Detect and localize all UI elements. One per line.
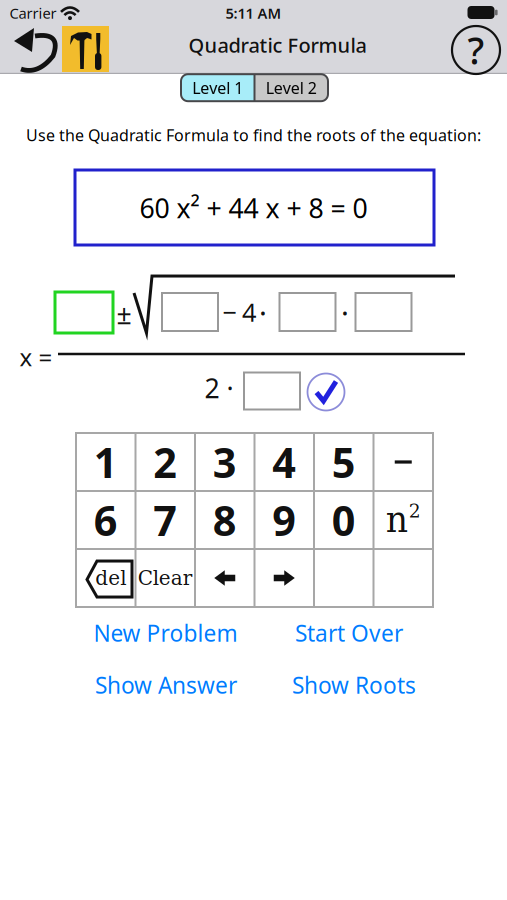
staticText: Level 2 [266, 77, 317, 98]
button[interactable]: 4 [255, 434, 313, 490]
button[interactable]: 2 [136, 434, 194, 490]
staticText: 60 x² + 44 x + 8 = 0 [139, 190, 367, 226]
button[interactable]: Coefficient a [279, 293, 335, 331]
staticText: 4 [272, 435, 296, 489]
button[interactable]: Coefficient b [55, 292, 113, 333]
button[interactable]: Move right [255, 550, 313, 606]
button[interactable]: 9 [255, 492, 313, 548]
button[interactable]: Show Roots [292, 670, 416, 700]
staticText: Carrier [9, 3, 56, 23]
staticText: x = [19, 341, 52, 373]
staticText: 0 [332, 493, 356, 547]
staticText: New Problem [93, 618, 237, 648]
staticText: Start Over [295, 618, 403, 648]
staticText: 2 [153, 435, 177, 489]
staticText: 6 [94, 493, 118, 547]
button[interactable]: 0 [315, 492, 372, 548]
button[interactable]: Coefficient a [244, 372, 300, 409]
button[interactable]: b squared [162, 293, 218, 331]
button[interactable]: 1 [77, 434, 134, 490]
button[interactable]: Check answer [307, 373, 344, 410]
staticText: · [259, 292, 267, 331]
staticText: 4 [242, 295, 256, 329]
button[interactable]: 6 [77, 492, 134, 548]
staticText: 2 · [204, 370, 233, 406]
button[interactable]: Delete [77, 550, 134, 606]
button[interactable]: Tools [62, 26, 109, 72]
staticText: · [341, 292, 349, 331]
button[interactable]: 7 [136, 492, 194, 548]
staticText: − [222, 295, 236, 329]
button[interactable]: n squared [374, 492, 432, 548]
staticText: n [386, 500, 408, 540]
button[interactable]: Start Over [295, 618, 403, 648]
staticText: del [95, 566, 126, 590]
button[interactable]: New Problem [93, 618, 237, 648]
button[interactable]: Level 2 [254, 74, 328, 101]
button[interactable]: Help [452, 26, 500, 74]
button[interactable]: Minus [374, 434, 432, 490]
staticText: 1 [94, 435, 118, 489]
staticText: ± [116, 296, 131, 332]
button[interactable]: 5 [315, 434, 372, 490]
button[interactable]: Clear [136, 550, 194, 606]
button[interactable]: Coefficient c [355, 293, 411, 331]
button[interactable]: Show Answer [95, 670, 237, 700]
button[interactable]: Move left [196, 550, 253, 606]
staticText: 5:11 AM [225, 3, 281, 23]
button[interactable]: Level 1 [181, 74, 254, 101]
staticText: Show Answer [95, 670, 237, 700]
staticText: Clear [138, 566, 193, 590]
staticText: 8 [213, 493, 237, 547]
staticText: Level 1 [192, 77, 243, 98]
staticText: Show Roots [292, 670, 416, 700]
staticText: ? [467, 25, 484, 75]
staticText: 5 [332, 435, 356, 489]
button[interactable]: Back [7, 26, 59, 70]
staticText: 3 [213, 435, 237, 489]
button[interactable]: 8 [196, 492, 253, 548]
staticText: 2 [409, 500, 421, 522]
staticText: 7 [153, 493, 177, 547]
staticText: 9 [272, 493, 296, 547]
staticText: Quadratic Formula [188, 32, 366, 58]
button[interactable]: 3 [196, 434, 253, 490]
staticText: Use the Quadratic Formula to find the ro… [26, 124, 481, 146]
